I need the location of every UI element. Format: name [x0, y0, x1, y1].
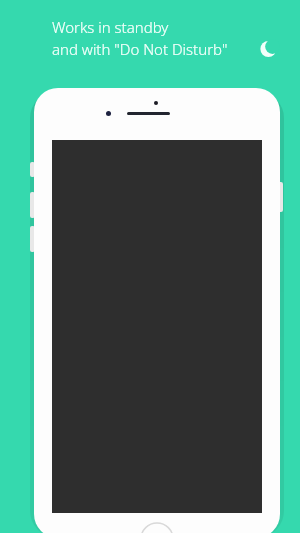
other: Home button — [140, 522, 174, 533]
button[interactable]: Volume down — [30, 226, 35, 252]
staticText: Works in standby — [52, 17, 169, 37]
button[interactable]: Volume up — [30, 192, 35, 218]
button[interactable]: Power — [278, 182, 283, 212]
button[interactable]: Silent switch — [30, 162, 35, 177]
other: Do Not Disturb moon — [261, 41, 277, 57]
staticText: and with "Do Not Disturb" — [52, 39, 228, 59]
